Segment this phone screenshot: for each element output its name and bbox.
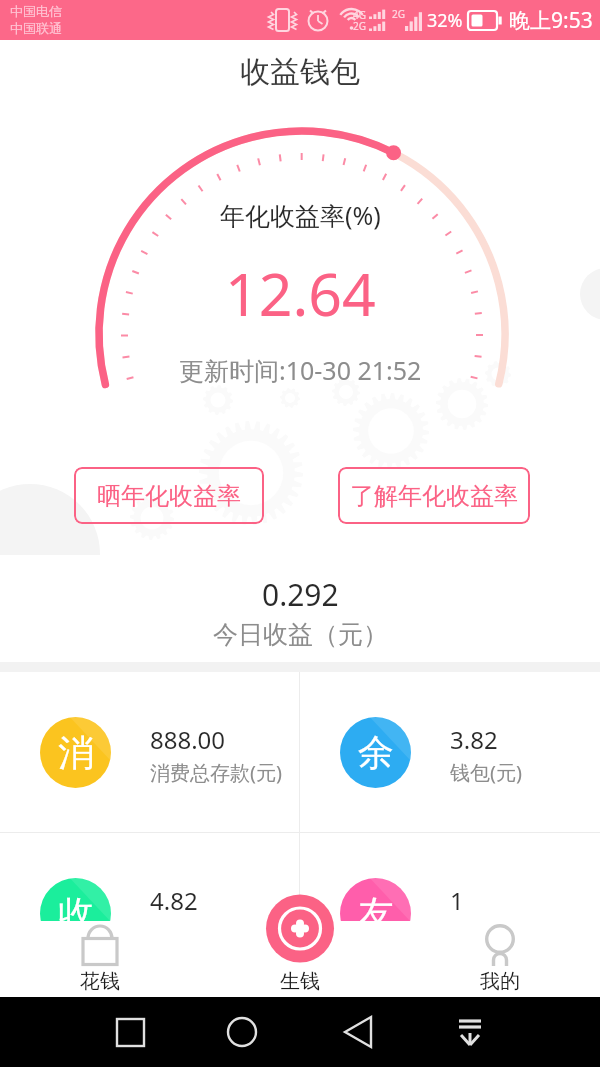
button[interactable]: 生钱 xyxy=(0,896,600,972)
button[interactable]: 收 xyxy=(0,833,299,993)
staticText: 收 xyxy=(58,891,94,936)
staticText: 收益钱包 xyxy=(240,53,360,91)
staticText: 好友(人) xyxy=(450,920,522,947)
staticText: 4.82 xyxy=(150,884,198,917)
button[interactable]: 我的 xyxy=(400,921,600,997)
staticText: 今日收益（元） xyxy=(213,619,388,650)
button[interactable]: 花钱 xyxy=(0,921,200,997)
staticText: 32% xyxy=(427,8,463,33)
staticText: 花钱 xyxy=(80,969,120,994)
staticText: 钱包(元) xyxy=(450,759,522,786)
button[interactable]: 了解年化收益率 xyxy=(338,467,530,524)
staticText: 中国电信 中国联通 xyxy=(10,3,62,37)
button[interactable]: 生钱 xyxy=(200,921,400,997)
staticText: 12.64 xyxy=(225,253,376,333)
staticText: 更新时间:10-30 21:52 xyxy=(179,353,422,387)
staticText: 晚上9:53 xyxy=(509,6,593,35)
button[interactable]: 晒年化收益率 xyxy=(74,467,264,524)
staticText: 友 xyxy=(358,891,394,936)
staticText: 年化收益率(%) xyxy=(220,198,381,232)
button[interactable]: 友 xyxy=(300,833,600,993)
button[interactable]: 消 xyxy=(0,672,299,832)
staticText: 888.00 xyxy=(150,723,226,756)
staticText: 了解年化收益率 xyxy=(350,481,518,511)
staticText: 生钱 xyxy=(280,969,320,994)
staticText: 消 xyxy=(58,730,94,775)
staticText: 我的 xyxy=(480,969,520,994)
staticText: 余 xyxy=(358,730,394,775)
staticText: 3.82 xyxy=(450,723,498,756)
staticText: 晒年化收益率 xyxy=(97,481,241,511)
staticText: 1 xyxy=(450,884,464,917)
button[interactable]: 余 xyxy=(300,672,600,832)
staticText: 0.292 xyxy=(262,574,339,615)
staticText: 消费总存款(元) xyxy=(150,759,282,786)
staticText: 4G 2G xyxy=(353,8,366,33)
staticText: 2G xyxy=(392,7,405,21)
